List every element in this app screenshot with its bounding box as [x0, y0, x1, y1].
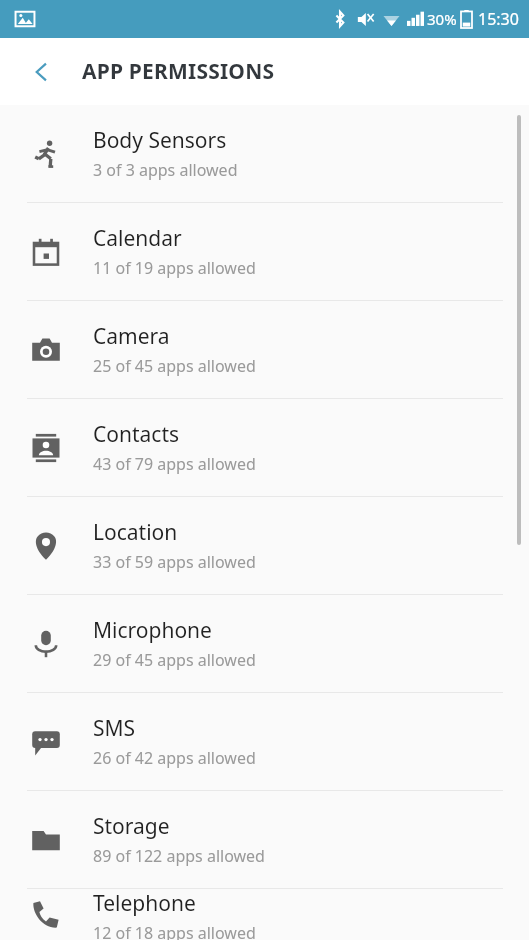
- staticText: 43 of 79 apps allowed: [93, 453, 256, 475]
- button[interactable]: Telephone: [0, 889, 529, 940]
- staticText: 26 of 42 apps allowed: [93, 747, 256, 769]
- staticText: Calendar: [93, 224, 182, 253]
- staticText: Contacts: [93, 420, 180, 449]
- button[interactable]: Contacts: [0, 399, 529, 496]
- staticText: Microphone: [93, 616, 212, 645]
- staticText: 11 of 19 apps allowed: [93, 257, 256, 279]
- button[interactable]: Body Sensors: [0, 105, 529, 202]
- button[interactable]: Camera: [0, 301, 529, 398]
- button[interactable]: Calendar: [0, 203, 529, 300]
- staticText: Location: [93, 518, 178, 547]
- staticText: Storage: [93, 812, 170, 841]
- staticText: 33 of 59 apps allowed: [93, 551, 256, 573]
- staticText: 15:30: [478, 8, 519, 30]
- staticText: SMS: [93, 714, 136, 743]
- staticText: 12 of 18 apps allowed: [93, 922, 256, 940]
- staticText: 29 of 45 apps allowed: [93, 649, 256, 671]
- staticText: 30%: [427, 9, 457, 29]
- staticText: 3 of 3 apps allowed: [93, 159, 238, 181]
- staticText: Body Sensors: [93, 126, 227, 155]
- staticText: Telephone: [93, 889, 196, 918]
- staticText: 25 of 45 apps allowed: [93, 355, 256, 377]
- staticText: 89 of 122 apps allowed: [93, 845, 265, 867]
- staticText: Camera: [93, 322, 170, 351]
- staticText: APP PERMISSIONS: [82, 57, 275, 86]
- button[interactable]: Storage: [0, 791, 529, 888]
- button[interactable]: Back: [18, 48, 66, 96]
- button[interactable]: Microphone: [0, 595, 529, 692]
- button[interactable]: Location: [0, 497, 529, 594]
- button[interactable]: SMS: [0, 693, 529, 790]
